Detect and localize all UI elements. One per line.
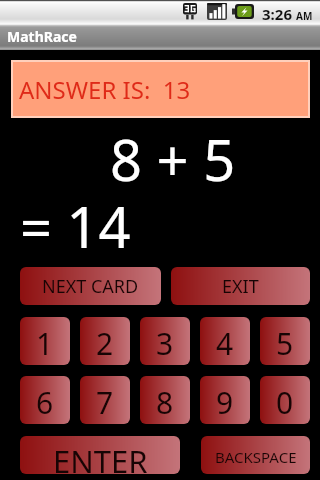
staticText: 1 bbox=[36, 323, 54, 364]
button[interactable]: EXIT bbox=[171, 267, 310, 305]
staticText: = 14 bbox=[20, 188, 131, 264]
staticText: ENTER bbox=[53, 440, 148, 474]
button[interactable]: NEXT CARD bbox=[20, 267, 161, 305]
staticText: NEXT CARD bbox=[42, 274, 139, 299]
button[interactable]: 9 bbox=[200, 376, 250, 424]
staticText: 9 bbox=[216, 382, 234, 423]
staticText: 2 bbox=[96, 323, 114, 364]
staticText: EXIT bbox=[222, 274, 259, 299]
button[interactable]: ENTER bbox=[20, 436, 180, 474]
staticText: 7 bbox=[96, 382, 114, 423]
staticText: 6 bbox=[36, 382, 54, 423]
staticText: 4 bbox=[216, 323, 234, 364]
button[interactable]: ANSWER IS: 13 bbox=[13, 62, 308, 116]
staticText: AM bbox=[296, 9, 313, 23]
staticText: ANSWER IS: 13 bbox=[19, 73, 191, 106]
button[interactable]: 7 bbox=[80, 376, 130, 424]
button[interactable]: 6 bbox=[20, 376, 70, 424]
staticText: 0 bbox=[276, 382, 294, 423]
staticText: 8 + 5 bbox=[110, 121, 236, 197]
other: Signal strength bbox=[207, 3, 227, 20]
button[interactable]: 8 bbox=[140, 376, 190, 424]
button[interactable]: 3 bbox=[140, 317, 190, 365]
staticText: 8 bbox=[156, 382, 174, 423]
staticText: 3 bbox=[156, 323, 174, 364]
button[interactable]: 2 bbox=[80, 317, 130, 365]
button[interactable]: 0 bbox=[260, 376, 310, 424]
button[interactable]: 1 bbox=[20, 317, 70, 365]
button[interactable]: BACKSPACE bbox=[201, 436, 310, 474]
button[interactable]: 5 bbox=[260, 317, 310, 365]
staticText: BACKSPACE bbox=[215, 447, 297, 467]
staticText: 3:26 bbox=[262, 4, 292, 24]
button[interactable]: 4 bbox=[200, 317, 250, 365]
staticText: MathRace bbox=[7, 27, 77, 46]
other: 3G network bbox=[183, 2, 197, 20]
other: Battery charging bbox=[232, 4, 254, 19]
staticText: 5 bbox=[276, 323, 294, 364]
